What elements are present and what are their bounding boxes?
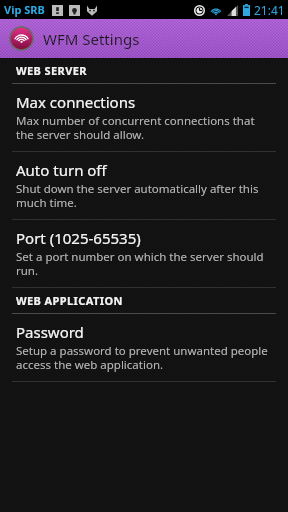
staticText: Password bbox=[16, 322, 84, 342]
staticText: Port (1025-65535) bbox=[16, 228, 141, 248]
staticText: Max number of concurrent connections tha… bbox=[16, 113, 274, 142]
staticText: Auto turn off bbox=[16, 160, 107, 180]
staticText: WEB SERVER bbox=[16, 63, 87, 78]
button[interactable]: Port (1025-65535) bbox=[0, 220, 288, 288]
button[interactable]: Max connections bbox=[0, 84, 288, 152]
staticText: WEB APPLICATION bbox=[16, 293, 123, 308]
staticText: WFM Settings bbox=[43, 29, 140, 49]
staticText: Set a port number on which the server sh… bbox=[16, 249, 274, 278]
staticText: Shut down the server automatically after… bbox=[16, 181, 274, 210]
other: App icon bbox=[9, 26, 34, 51]
button[interactable]: Password bbox=[0, 314, 288, 382]
staticText: Max connections bbox=[16, 92, 136, 112]
staticText: 21:41 bbox=[254, 2, 285, 18]
button[interactable]: Auto turn off bbox=[0, 152, 288, 220]
staticText: Vip SRB bbox=[4, 2, 45, 17]
staticText: Setup a password to prevent unwanted peo… bbox=[16, 343, 274, 372]
